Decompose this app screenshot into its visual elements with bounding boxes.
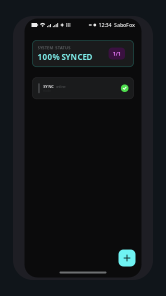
staticText: SYNC: [43, 84, 54, 89]
staticText: 12:34: [99, 21, 112, 29]
staticText: online: [55, 84, 65, 89]
staticText: SYSTEM STATUS: [37, 45, 70, 50]
button[interactable]: New item: [118, 249, 135, 266]
button[interactable]: SYNC: [32, 78, 133, 99]
staticText: 100% SYNCED: [37, 51, 92, 62]
staticText: SaboFox: [114, 21, 135, 29]
staticText: 1/1: [113, 50, 121, 57]
